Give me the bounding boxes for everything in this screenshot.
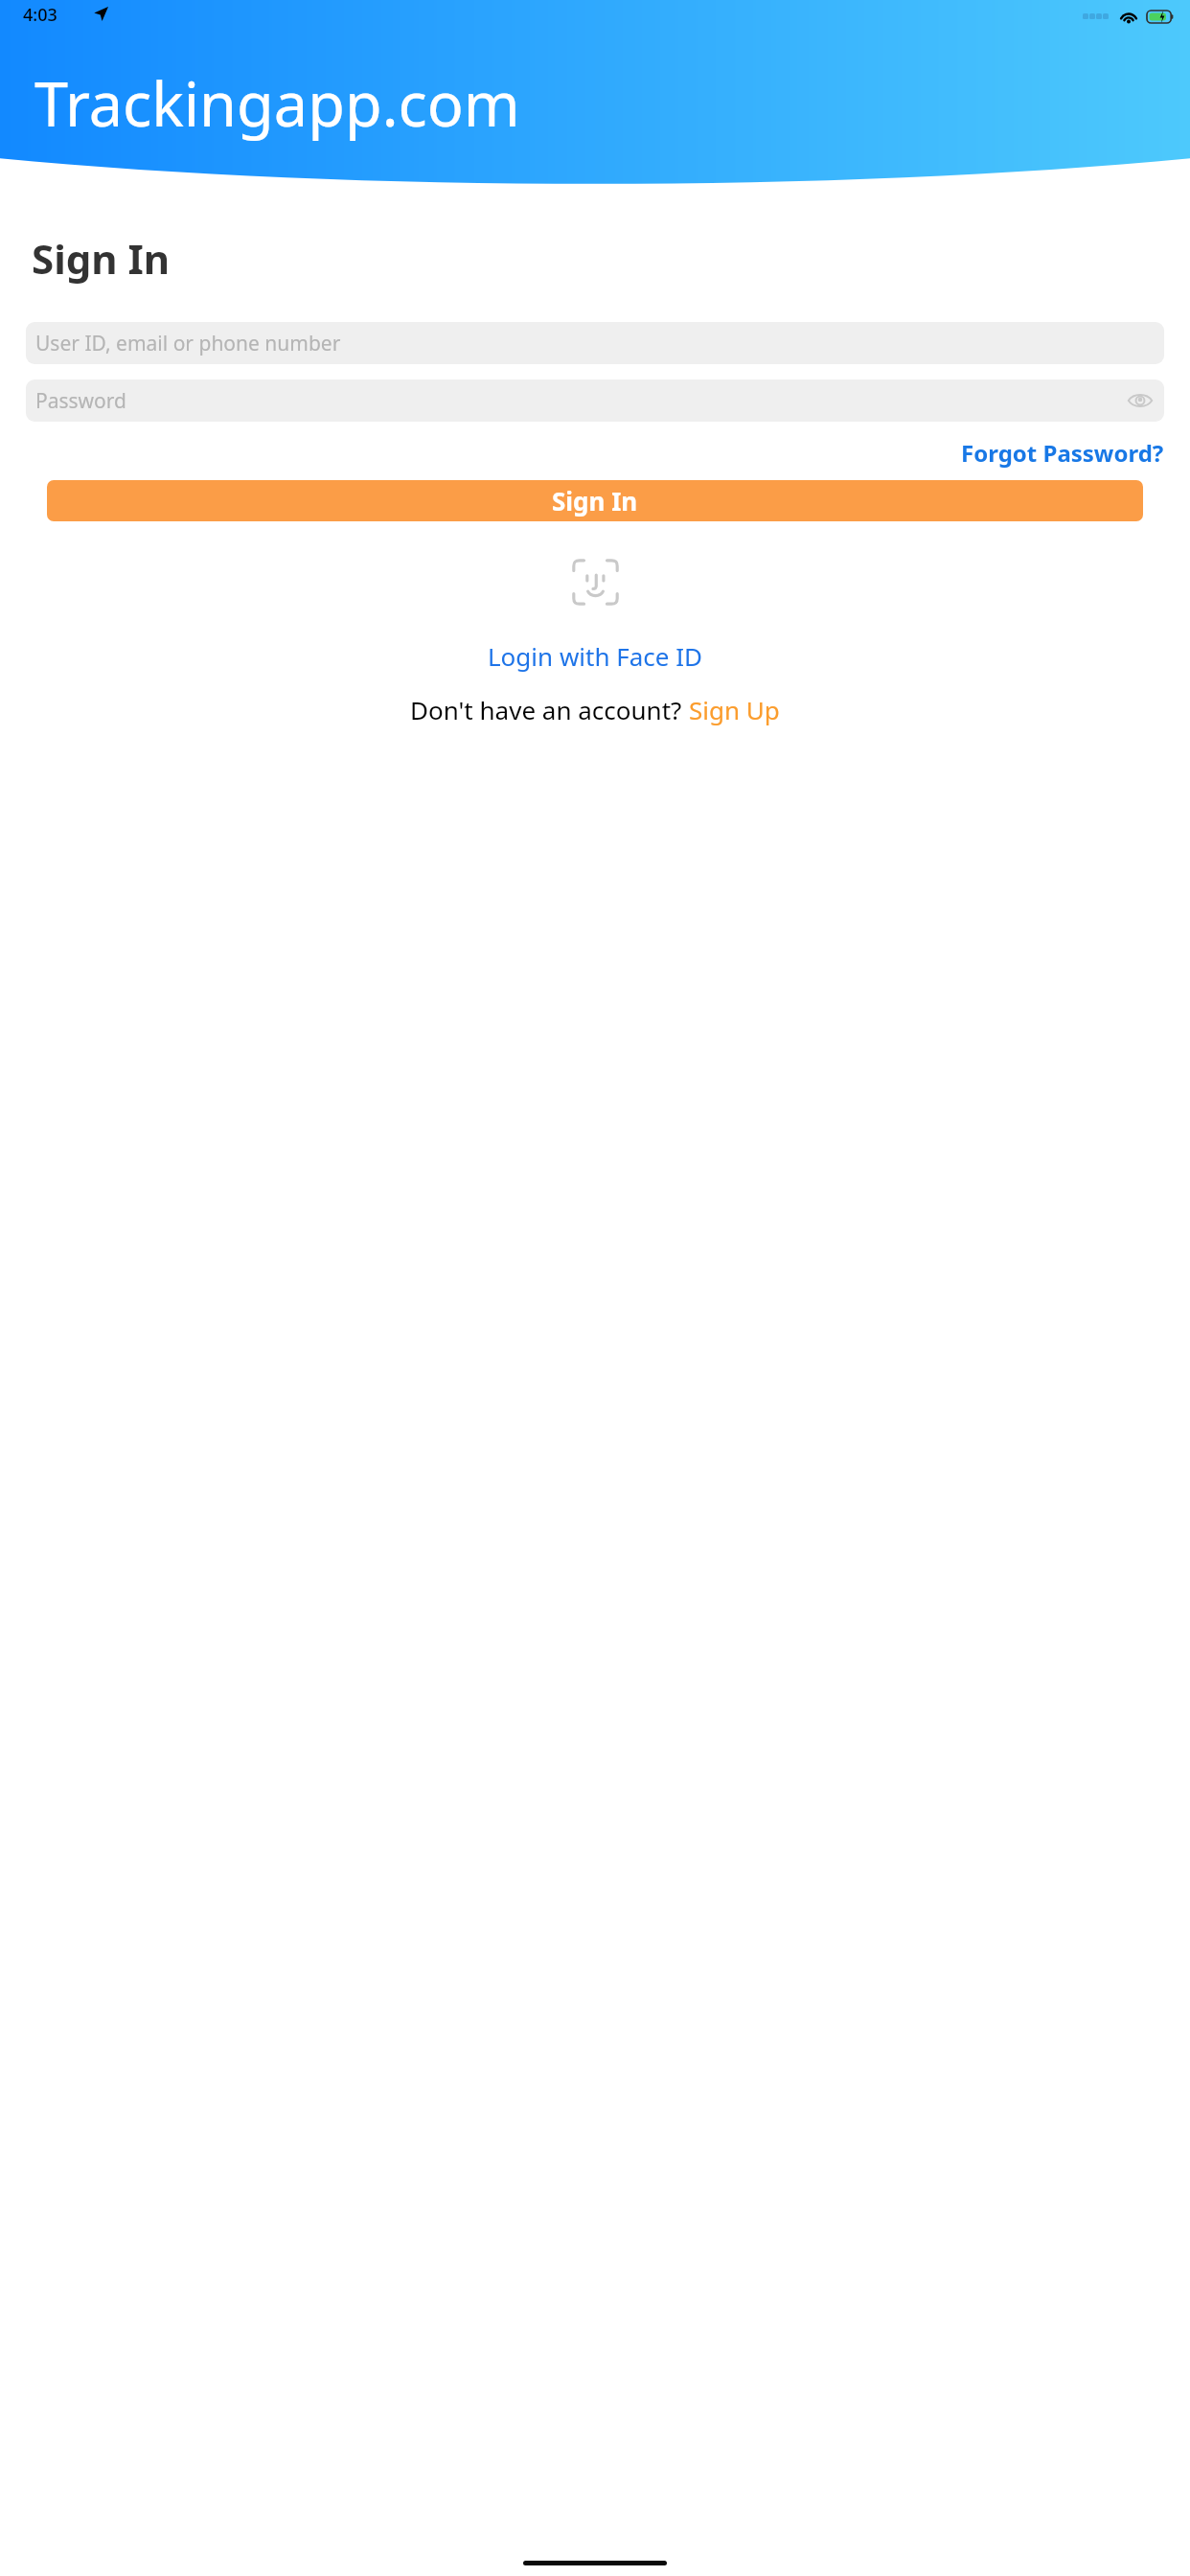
staticText: Sign In bbox=[32, 231, 171, 286]
staticText: Login with Face ID bbox=[488, 639, 703, 673]
button[interactable]: Face ID bbox=[571, 558, 620, 607]
staticText: Trackingapp.com bbox=[34, 62, 1190, 145]
button[interactable]: Forgot Password? bbox=[961, 437, 1164, 469]
button[interactable]: User ID, email or phone number bbox=[26, 322, 1164, 364]
staticText: Password bbox=[35, 387, 126, 415]
staticText: Don't have an account? bbox=[410, 693, 689, 726]
button[interactable]: Sign In bbox=[47, 480, 1143, 521]
button[interactable]: Show password bbox=[1123, 383, 1157, 418]
button[interactable]: Sign Up bbox=[689, 693, 780, 726]
staticText: 4:03 bbox=[23, 3, 57, 27]
button[interactable]: Password bbox=[26, 379, 1164, 422]
staticText: Sign In bbox=[552, 484, 638, 517]
staticText: User ID, email or phone number bbox=[35, 330, 341, 357]
staticText: Sign Up bbox=[689, 693, 780, 726]
staticText: Forgot Password? bbox=[961, 437, 1164, 469]
button[interactable]: Login with Face ID bbox=[488, 639, 703, 673]
